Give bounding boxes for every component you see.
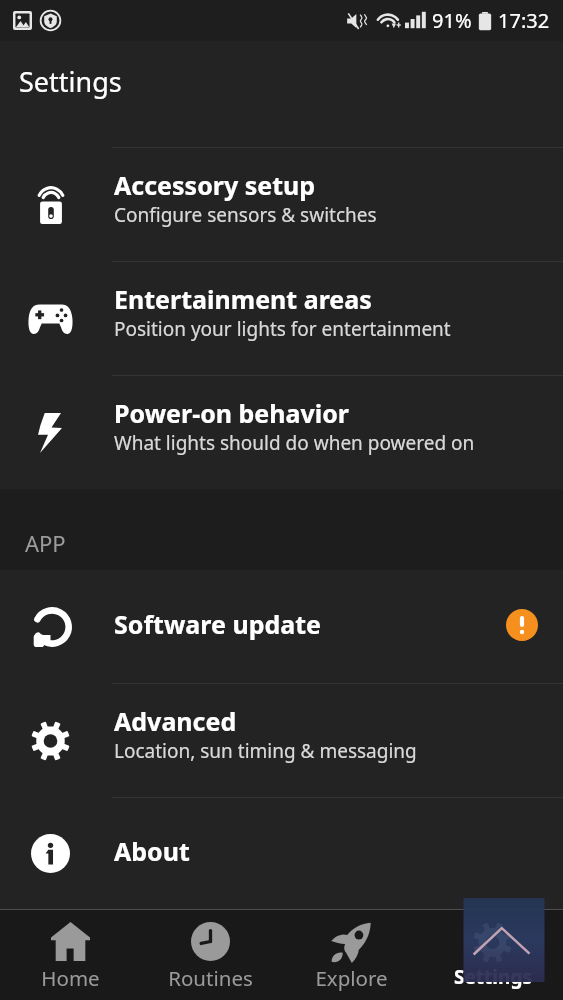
- staticText: 91%: [432, 7, 472, 34]
- button[interactable]: Power-on behavior: [0, 376, 563, 489]
- staticText: Location, sun timing & messaging: [114, 738, 417, 764]
- staticText: About: [114, 834, 190, 868]
- staticText: Software update: [114, 607, 322, 641]
- button[interactable]: Advanced: [0, 684, 563, 797]
- button[interactable]: Accessory setup: [0, 148, 563, 261]
- staticText: Routines: [168, 964, 253, 992]
- staticText: Settings: [19, 63, 122, 100]
- staticText: APP: [25, 528, 66, 558]
- button[interactable]: Routines: [140, 910, 281, 1000]
- staticText: Position your lights for entertainment: [114, 316, 451, 342]
- button[interactable]: Software update: [0, 570, 563, 683]
- staticText: Power-on behavior: [114, 396, 350, 430]
- staticText: Accessory setup: [114, 168, 316, 202]
- staticText: Settings: [454, 964, 532, 990]
- staticText: Entertainment areas: [114, 282, 372, 316]
- button[interactable]: Entertainment areas: [0, 262, 563, 375]
- staticText: Configure sensors & switches: [114, 202, 377, 228]
- button[interactable]: Settings: [422, 910, 563, 1000]
- button[interactable]: Home: [0, 910, 140, 1000]
- button[interactable]: About: [0, 798, 563, 909]
- staticText: Home: [41, 964, 100, 992]
- staticText: 17:32: [498, 7, 550, 34]
- staticText: Explore: [315, 964, 388, 992]
- staticText: What lights should do when powered on: [114, 430, 475, 456]
- staticText: Advanced: [114, 704, 237, 738]
- button[interactable]: Explore: [281, 910, 422, 1000]
